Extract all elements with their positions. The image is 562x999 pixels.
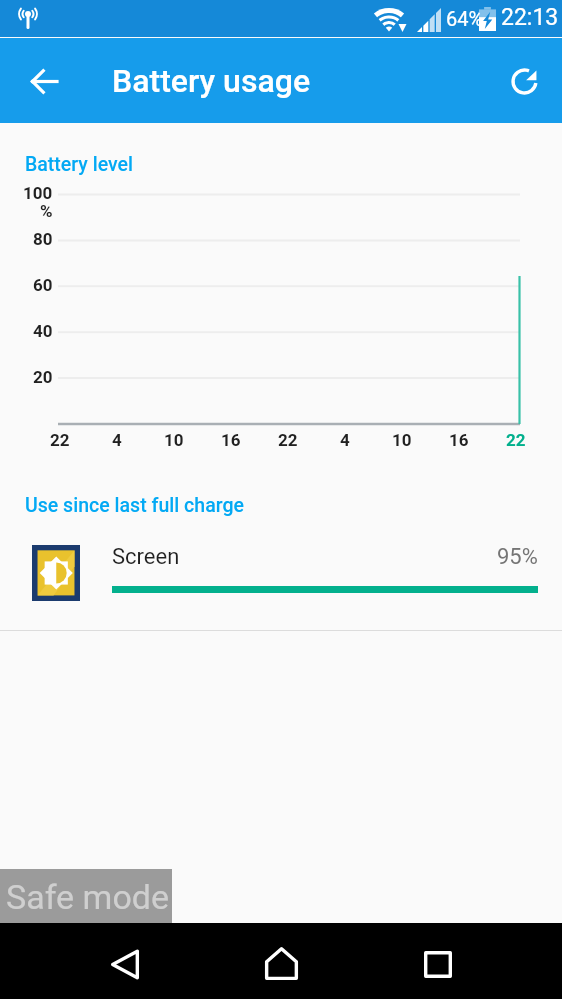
staticText: 20 [33, 367, 53, 387]
staticText: Battery usage [112, 62, 311, 100]
staticText: 16 [221, 430, 241, 450]
staticText: 22:13 [501, 4, 559, 31]
staticText: Screen [112, 544, 180, 570]
staticText: Battery level [25, 153, 134, 176]
button[interactable]: Home [253, 935, 310, 992]
button[interactable]: Navigate up [20, 57, 68, 105]
staticText: 100 [23, 183, 53, 203]
staticText: 60 [33, 275, 53, 295]
staticText: 64% [446, 7, 484, 30]
staticText: % [40, 201, 53, 221]
staticText: 22 [506, 430, 526, 450]
staticText: 22 [50, 430, 70, 450]
staticText: 10 [164, 430, 184, 450]
button[interactable]: Refresh [500, 57, 548, 105]
button[interactable]: Safe mode [0, 869, 172, 923]
button[interactable]: Back [96, 936, 153, 993]
staticText: 16 [449, 430, 469, 450]
staticText: 22 [278, 430, 298, 450]
staticText: Safe mode [6, 877, 169, 917]
staticText: 40 [33, 321, 53, 341]
button[interactable]: Screen [0, 529, 562, 630]
staticText: 10 [392, 430, 412, 450]
staticText: Use since last full charge [25, 494, 244, 517]
staticText: 80 [33, 229, 53, 249]
button[interactable]: Recent apps [409, 936, 466, 993]
staticText: 4 [340, 430, 350, 450]
staticText: 4 [112, 430, 122, 450]
staticText: 95% [497, 544, 538, 570]
